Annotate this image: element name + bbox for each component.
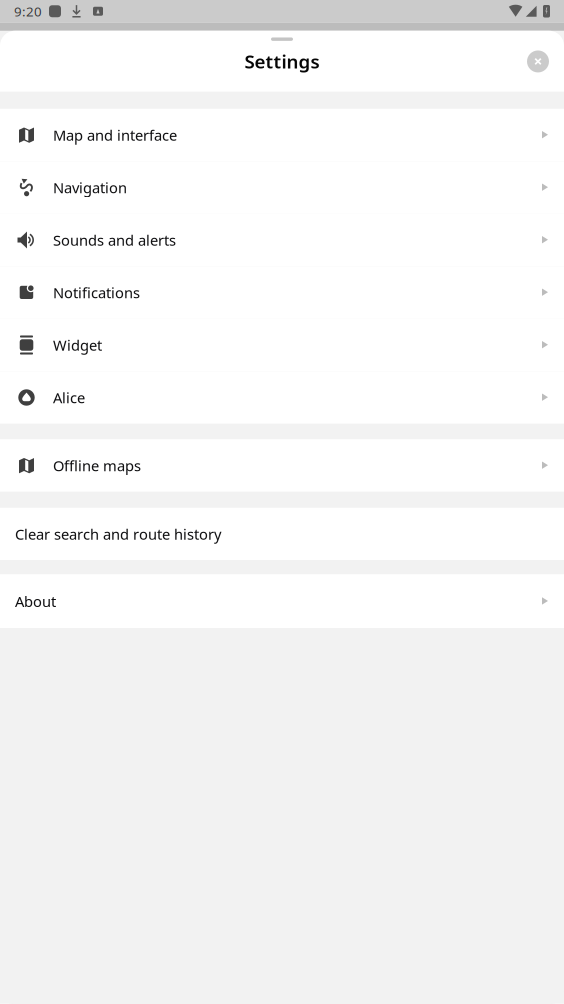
button[interactable]: Navigation <box>0 161 564 214</box>
staticText: Sounds and alerts <box>53 230 176 250</box>
button[interactable]: Clear search and route history <box>0 508 564 560</box>
staticText: Clear search and route history <box>15 524 221 544</box>
button[interactable]: Alice <box>0 371 564 424</box>
button[interactable]: About <box>0 574 564 628</box>
staticText: Offline maps <box>53 456 141 475</box>
staticText: About <box>15 591 56 611</box>
button[interactable]: Map and interface <box>0 109 564 161</box>
staticText: 9:20 <box>14 2 42 20</box>
button[interactable]: Sounds and alerts <box>0 214 564 266</box>
staticText: Alice <box>53 388 85 407</box>
button[interactable]: Close <box>523 46 553 76</box>
staticText: Navigation <box>53 178 127 197</box>
staticText: Settings <box>244 49 319 74</box>
staticText: Map and interface <box>53 125 177 145</box>
button[interactable]: Offline maps <box>0 439 564 492</box>
staticText: Widget <box>53 335 102 355</box>
button[interactable]: Widget <box>0 319 564 371</box>
button[interactable]: Notifications <box>0 266 564 319</box>
staticText: Notifications <box>53 283 140 302</box>
